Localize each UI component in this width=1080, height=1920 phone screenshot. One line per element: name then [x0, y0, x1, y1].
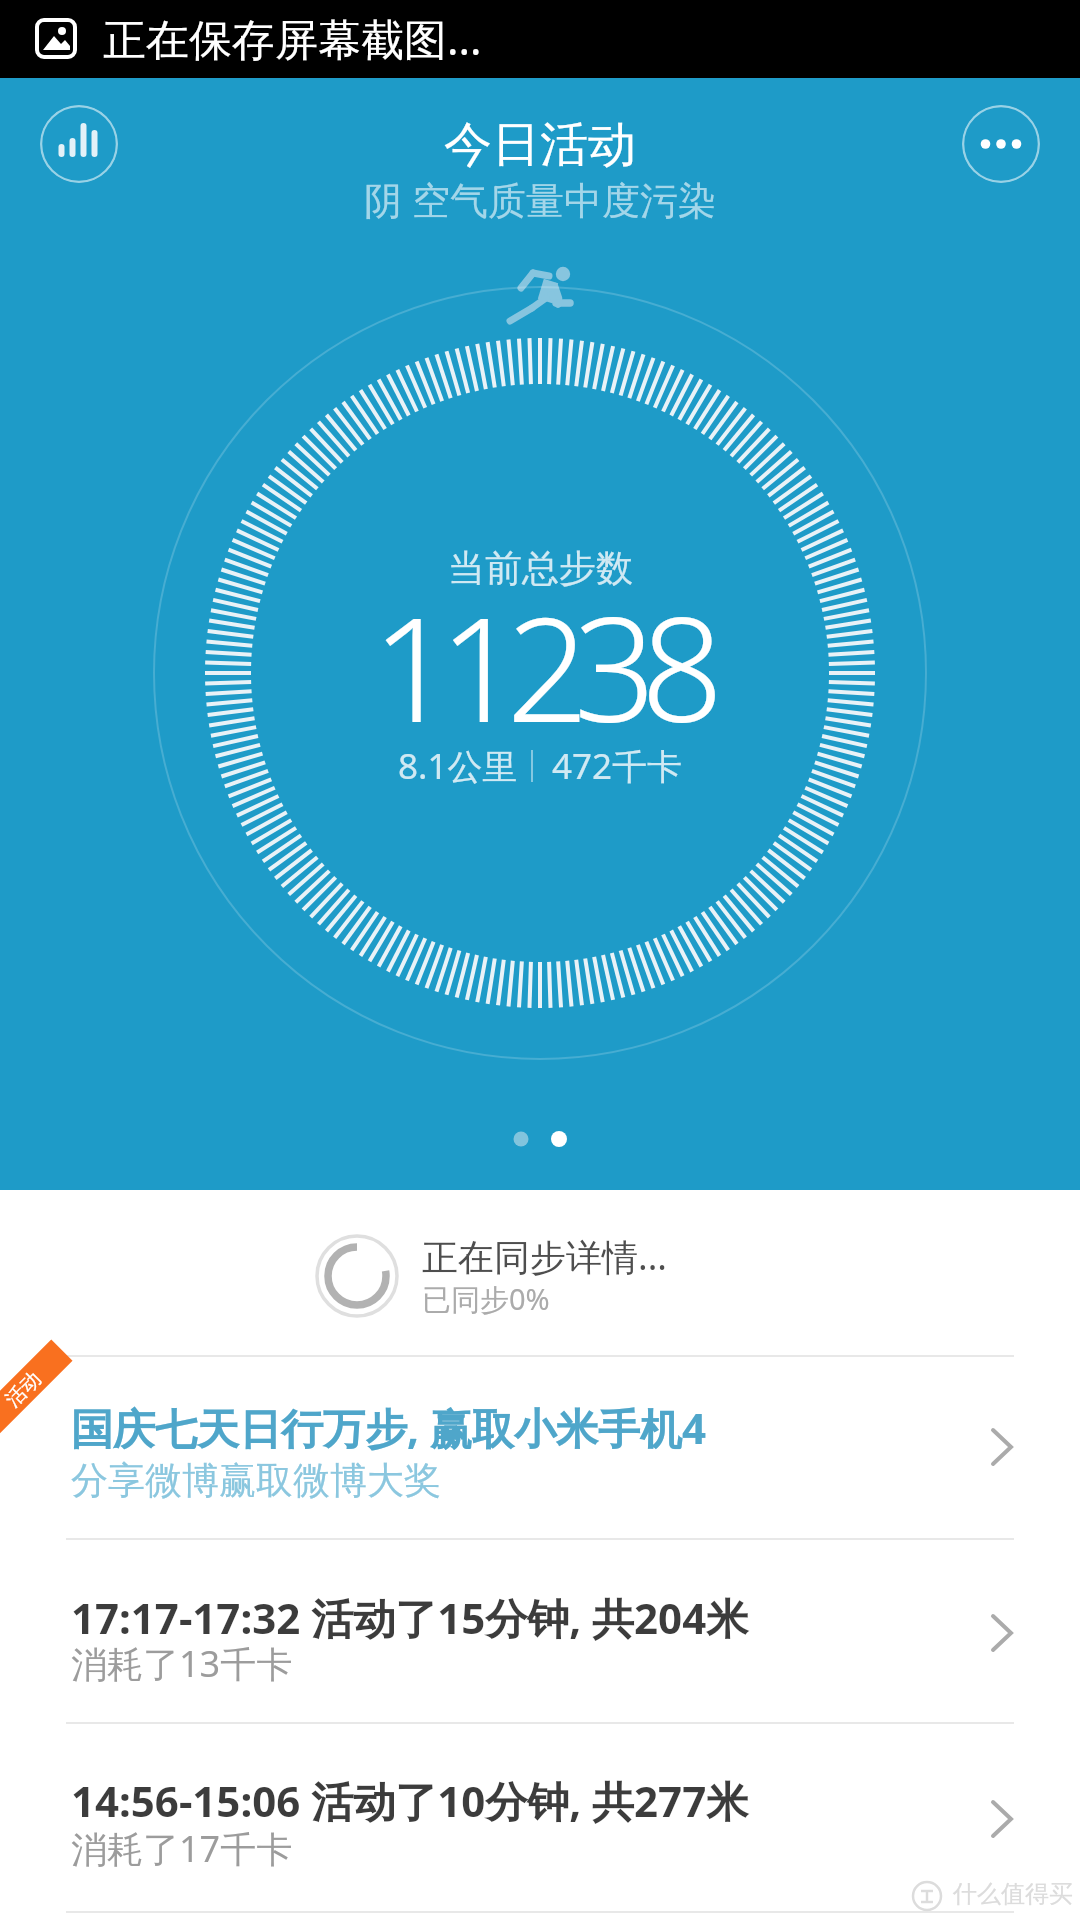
staticText: 17:17-17:32 活动了15分钟, 共204米: [71, 1589, 749, 1646]
button[interactable]: [40, 105, 118, 183]
staticText: 分享微博赢取微博大奖: [71, 1457, 441, 1504]
staticText: 国庆七天日行万步, 赢取小米手机4: [71, 1399, 706, 1456]
staticText: 阴 空气质量中度污染: [364, 173, 716, 225]
staticText: 消耗了13千卡: [71, 1639, 293, 1688]
staticText: 正在保存屏幕截图...: [103, 9, 482, 68]
staticText: 今日活动: [444, 115, 636, 175]
staticText: 11238: [372, 568, 709, 764]
staticText: 消耗了17千卡: [71, 1824, 293, 1873]
button[interactable]: [962, 105, 1040, 183]
staticText: 活动: [0, 1366, 46, 1412]
staticText: 472千卡: [552, 742, 683, 790]
staticText: 8.1公里: [398, 742, 518, 790]
staticText: 14:56-15:06 活动了10分钟, 共277米: [71, 1772, 749, 1829]
button[interactable]: 国庆七天日行万步, 赢取小米手机4: [0, 1357, 1080, 1538]
staticText: 已同步0%: [422, 1279, 550, 1319]
button[interactable]: 17:17-17:32 活动了15分钟, 共204米: [0, 1540, 1080, 1722]
button[interactable]: 14:56-15:06 活动了10分钟, 共277米: [0, 1724, 1080, 1906]
staticText: 当前总步数: [448, 545, 633, 592]
staticText: 什么值得买: [953, 1879, 1073, 1909]
staticText: 正在同步详情...: [422, 1232, 667, 1281]
